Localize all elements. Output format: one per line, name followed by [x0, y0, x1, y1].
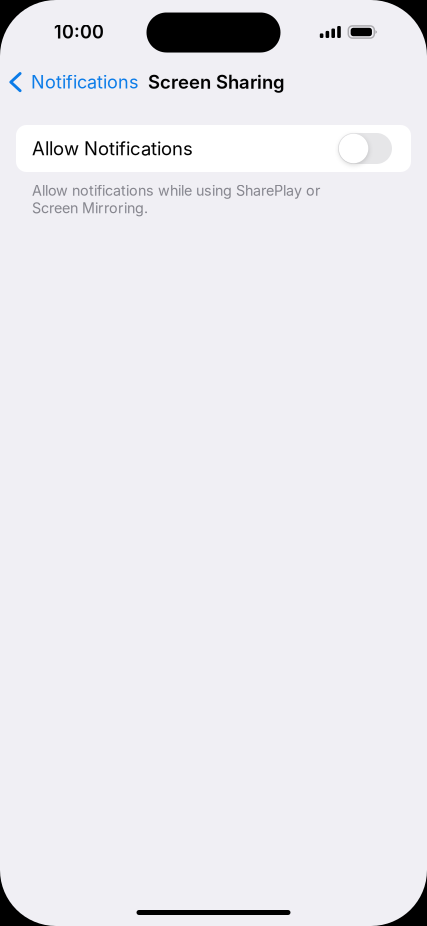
staticText: 10:00 — [54, 21, 104, 43]
button[interactable]: Allow Notifications — [16, 125, 411, 172]
staticText: Allow Notifications — [32, 137, 193, 160]
staticText: Notifications — [31, 71, 138, 93]
staticText: Screen Sharing — [148, 71, 285, 93]
button[interactable]: Back to Notifications — [0, 62, 142, 102]
staticText: Allow notifications while using SharePla… — [32, 182, 320, 217]
